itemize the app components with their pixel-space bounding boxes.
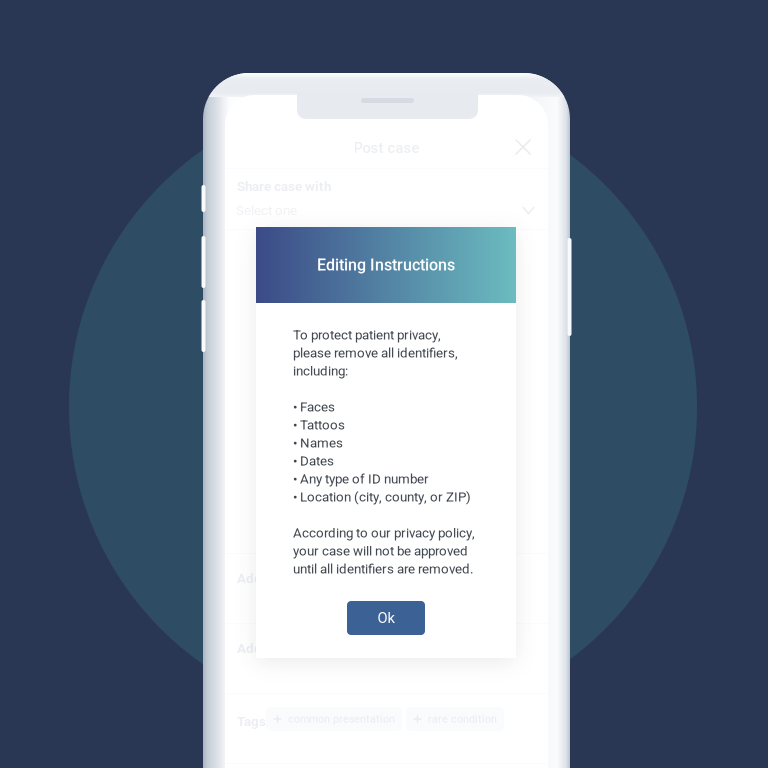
staticText: until all identifiers are removed. xyxy=(293,561,474,577)
staticText: your case will not be approved xyxy=(293,543,468,559)
staticText: rare condition xyxy=(428,713,497,725)
staticText: According to our privacy policy, xyxy=(293,525,475,541)
staticText: • Names xyxy=(293,435,343,451)
staticText: Post case xyxy=(353,139,419,157)
staticText: • Any type of ID number xyxy=(293,471,429,487)
button[interactable]: Close xyxy=(506,130,540,164)
staticText: Add more xyxy=(237,571,297,586)
staticText: Editing Instructions xyxy=(317,256,455,274)
staticText: Share case with xyxy=(237,179,331,194)
staticText: Select one xyxy=(236,203,297,218)
staticText: Tags xyxy=(237,714,266,729)
staticText: • Tattoos xyxy=(293,417,345,433)
button[interactable]: rare condition xyxy=(406,707,504,731)
staticText: • Dates xyxy=(293,453,334,469)
staticText: please remove all identifiers, xyxy=(293,345,458,361)
staticText: Ok xyxy=(377,609,394,627)
button[interactable]: Ok xyxy=(347,601,425,635)
button[interactable]: common presentation xyxy=(266,707,402,731)
staticText: including: xyxy=(293,363,348,379)
staticText: To protect patient privacy, xyxy=(293,327,441,343)
staticText: • Faces xyxy=(293,399,335,415)
staticText: • Location (city, county, or ZIP) xyxy=(293,489,471,505)
staticText: Add notes xyxy=(237,641,299,656)
staticText: common presentation xyxy=(288,713,395,725)
